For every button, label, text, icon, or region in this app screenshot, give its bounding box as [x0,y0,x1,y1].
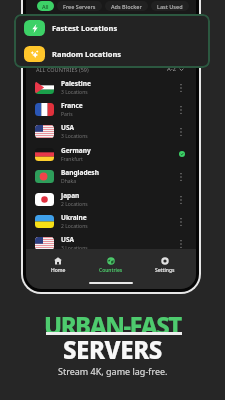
staticText: 3 Locations [61,133,88,140]
button[interactable]: More options [176,217,185,226]
staticText: Paris [61,111,73,118]
staticText: Free Servers [63,3,96,10]
staticText: Countries [99,267,123,274]
button[interactable]: More options [176,172,185,181]
staticText: Palestine [61,79,91,88]
button[interactable]: USA [35,120,185,142]
button[interactable]: Ukraine [35,210,185,232]
button[interactable]: USA [35,232,185,254]
staticText: Ads Blocker [111,3,142,10]
staticText: ALL COUNTRIES (59) [36,66,89,73]
staticText: Ukraine [61,213,87,222]
staticText: Last Used [157,3,183,10]
staticText: Home [51,267,66,274]
staticText: SERVERS [63,333,162,366]
button[interactable]: Countries [96,257,126,274]
staticText: Frankfurt [61,156,83,163]
staticText: 3 Locations [61,89,88,96]
staticText: Stream 4K, game lag-free. [58,365,168,377]
staticText: USA [61,123,74,132]
staticText: Fastest Locations [64,23,130,33]
staticText: Random Locations [52,49,122,59]
staticText: Germany [61,146,91,155]
staticText: All [42,3,49,10]
button[interactable]: All [37,1,54,11]
button[interactable]: More options [176,83,185,92]
staticText: France [61,101,83,110]
button[interactable]: Palestine [35,76,185,98]
button[interactable]: Last Used [151,1,189,11]
button[interactable]: Home [43,257,73,274]
staticText: Fastest Locations [52,23,118,33]
button[interactable]: Random Locations [36,44,196,64]
staticText: Random Locations [64,49,134,59]
staticText: Japan [61,191,80,200]
staticText: 2 Locations [61,201,88,208]
button[interactable]: Japan [35,188,185,210]
button[interactable]: More options [176,239,185,248]
staticText: A-Z [167,65,177,73]
button[interactable]: More options [176,105,185,114]
button[interactable]: More options [176,127,185,136]
staticText: Bangladesh [61,168,99,177]
button[interactable]: Germany [35,143,185,165]
button[interactable]: Settings [150,257,180,274]
staticText: Dhaka [61,178,77,185]
staticText: 3 Locations [61,245,88,252]
button[interactable]: Free Servers [57,1,102,11]
button[interactable]: Bangladesh [35,165,185,187]
button[interactable]: A-Z [167,65,184,73]
button[interactable]: Ads Blocker [105,1,148,11]
button[interactable]: France [35,98,185,120]
button[interactable]: Random Locations [24,44,210,64]
staticText: 2 Locations [61,223,88,230]
button[interactable]: Fastest Locations [36,18,196,38]
button[interactable]: Fastest Locations [24,18,210,38]
button[interactable]: More options [176,195,185,204]
staticText: URBAN-FAST [44,309,181,342]
staticText: Settings [155,267,175,274]
staticText: USA [61,235,74,244]
